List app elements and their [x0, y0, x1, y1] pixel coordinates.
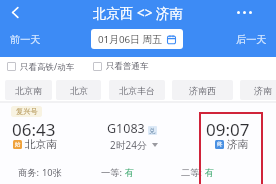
- staticText: 济南西: [189, 85, 216, 96]
- staticText: 06:43: [12, 118, 56, 141]
- staticText: 复兴号: [16, 107, 38, 116]
- button[interactable]: 北京丰台: [109, 80, 165, 100]
- staticText: 商务:: [18, 166, 42, 179]
- staticText: 一等:: [101, 166, 125, 179]
- staticText: 北京西 <> 济南: [93, 4, 183, 22]
- staticText: 有: [205, 167, 215, 179]
- button[interactable]: 北京南: [5, 80, 52, 100]
- staticText: 北京: [70, 85, 88, 96]
- staticText: 前一天: [10, 33, 41, 46]
- staticText: 09:07: [206, 118, 250, 141]
- button[interactable]: 后一天: [230, 29, 273, 49]
- staticText: 北京丰台: [119, 85, 155, 96]
- button[interactable]: 济南西: [172, 80, 233, 100]
- staticText: 2时24分: [110, 138, 147, 152]
- staticText: G1083: [107, 120, 145, 137]
- staticText: 只看高铁/动车: [20, 61, 75, 73]
- button[interactable]: 北京: [56, 80, 101, 100]
- button[interactable]: 01月06日 周五: [91, 29, 183, 49]
- staticText: 有: [125, 167, 135, 179]
- staticText: 后一天: [236, 33, 267, 46]
- staticText: 10张: [42, 166, 62, 179]
- button[interactable]: 前一天: [4, 29, 47, 49]
- button[interactable]: 只看普通车: [93, 60, 149, 73]
- button[interactable]: 济南: [240, 80, 276, 100]
- staticText: 北京南: [15, 85, 42, 96]
- staticText: 终: [217, 141, 223, 148]
- button[interactable]: More options: [232, 0, 256, 25]
- staticText: 二等:: [181, 166, 205, 179]
- button[interactable]: 只看高铁/动车: [7, 60, 75, 73]
- staticText: 济南: [254, 85, 272, 96]
- staticText: 始: [15, 141, 21, 148]
- staticText: 兑: [149, 127, 156, 135]
- staticText: 济南: [227, 138, 249, 151]
- staticText: 01月06日 周五: [98, 33, 163, 46]
- button[interactable]: Back: [2, 0, 28, 25]
- button[interactable]: 2时24分: [110, 138, 158, 152]
- staticText: 只看普通车: [106, 61, 149, 72]
- staticText: 北京南: [25, 138, 57, 151]
